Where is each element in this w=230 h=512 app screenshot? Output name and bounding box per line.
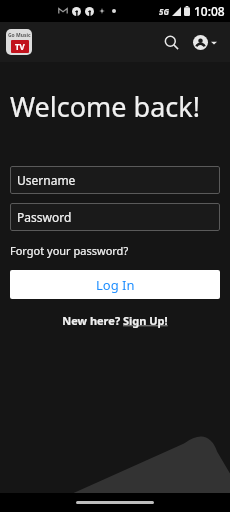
staticText: 5G: [159, 6, 169, 17]
button[interactable]: Search: [154, 25, 188, 59]
staticText: Password: [17, 209, 72, 225]
staticText: New here? Sign Up!: [62, 313, 168, 328]
button[interactable]: New here? Sign Up!: [10, 313, 220, 328]
staticText: 10:08: [194, 3, 225, 19]
staticText: Forgot your password?: [10, 243, 129, 258]
staticText: Welcome back!: [10, 88, 200, 125]
staticText: TV: [15, 41, 25, 52]
button[interactable]: Username: [10, 166, 220, 194]
button[interactable]: Password: [10, 203, 220, 231]
button[interactable]: Forgot your password?: [10, 241, 129, 260]
button[interactable]: Go Music TV logo: [6, 29, 32, 55]
button[interactable]: Log In: [10, 270, 220, 299]
button[interactable]: Account: [190, 29, 220, 56]
staticText: Go Music: [8, 32, 31, 39]
staticText: Username: [17, 172, 76, 188]
staticText: Log In: [96, 276, 135, 294]
